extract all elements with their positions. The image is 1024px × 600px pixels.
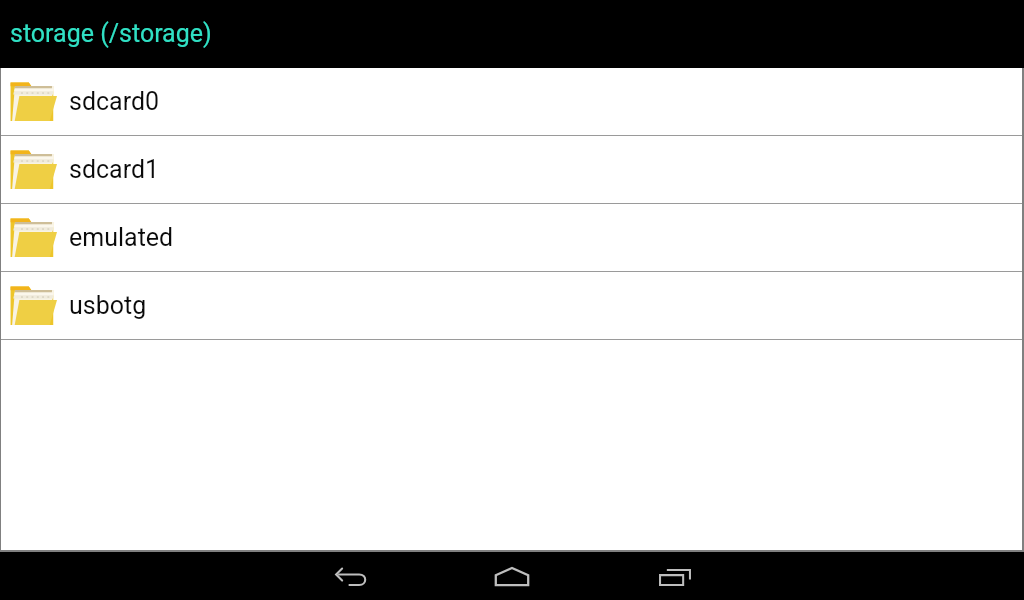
staticText: emulated [69, 223, 174, 252]
staticText: storage (/storage) [10, 19, 212, 48]
button[interactable]: Back [318, 552, 382, 600]
staticText: usbotg [69, 291, 147, 320]
button[interactable]: Recent apps [643, 552, 707, 600]
staticText: sdcard1 [69, 155, 160, 184]
button[interactable]: usbotg [0, 272, 1024, 339]
button[interactable]: storage (/storage) [0, 0, 1024, 68]
button[interactable]: sdcard0 [0, 68, 1024, 135]
button[interactable]: emulated [0, 204, 1024, 271]
staticText: sdcard0 [69, 87, 160, 116]
button[interactable]: sdcard1 [0, 136, 1024, 203]
button[interactable]: Home [480, 552, 544, 600]
